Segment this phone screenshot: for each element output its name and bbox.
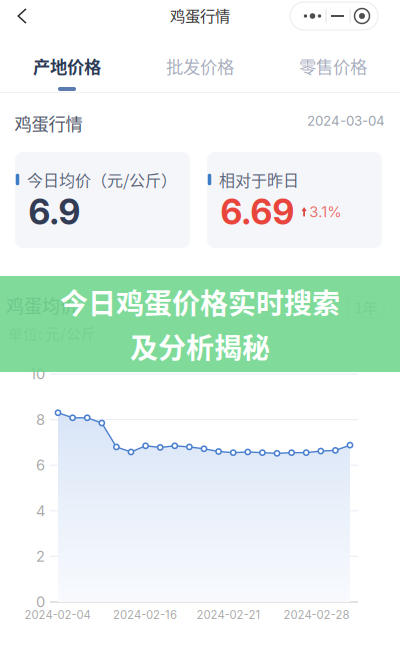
- staticText: 产地价格: [33, 53, 101, 79]
- staticText: 零售价格: [299, 53, 367, 79]
- staticText: 及分析揭秘: [130, 326, 270, 366]
- staticText: 2024-02-16: [113, 608, 177, 622]
- staticText: 鸡蛋行情: [14, 110, 82, 136]
- staticText: 今日均价（元/公斤）: [27, 168, 177, 191]
- staticText: 相对于昨日: [219, 168, 299, 191]
- button[interactable]: 更多: [290, 2, 378, 30]
- staticText: 6.69: [220, 191, 294, 233]
- staticText: 8: [36, 411, 45, 428]
- button[interactable]: 返回: [3, 0, 41, 36]
- button[interactable]: 零售价格: [266, 36, 399, 92]
- button[interactable]: 批发价格: [133, 36, 266, 92]
- staticText: 1年: [354, 296, 377, 318]
- staticText: 2024-03-04: [307, 113, 385, 129]
- staticText: 4: [36, 502, 45, 520]
- staticText: 鸡蛋均价: [6, 292, 78, 318]
- staticText: 2: [36, 547, 45, 565]
- staticText: 10: [30, 365, 45, 383]
- staticText: 2024-02-04: [24, 608, 90, 622]
- staticText: 今日鸡蛋价格实时搜索: [60, 281, 340, 322]
- staticText: 3.1%: [309, 203, 341, 221]
- staticText: 0: [36, 593, 45, 611]
- staticText: 6: [36, 456, 45, 474]
- staticText: 鸡蛋行情: [170, 4, 230, 26]
- button[interactable]: 产地价格: [0, 36, 133, 92]
- staticText: 2024-02-21: [196, 608, 260, 622]
- staticText: 2024-02-28: [283, 608, 349, 622]
- staticText: 单位: 元/公斤: [8, 322, 96, 344]
- staticText: 批发价格: [166, 53, 234, 79]
- staticText: 6.9: [28, 191, 80, 233]
